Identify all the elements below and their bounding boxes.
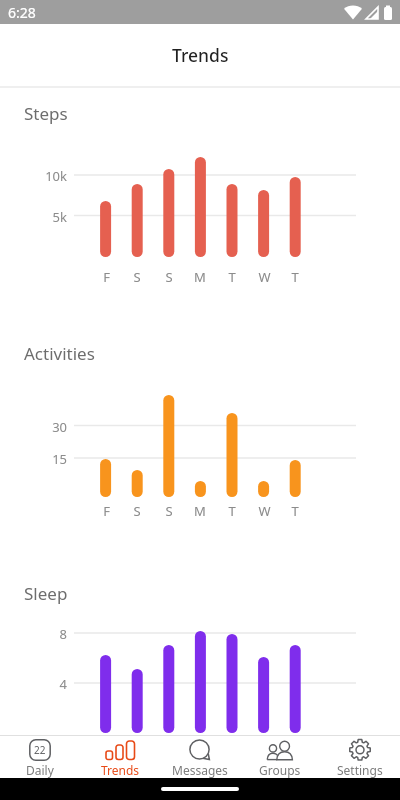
staticText: F bbox=[103, 268, 110, 284]
staticText: Sleep bbox=[24, 582, 68, 605]
staticText: 10k bbox=[45, 167, 67, 183]
staticText: M bbox=[194, 502, 206, 518]
staticText: T bbox=[228, 268, 236, 284]
staticText: 5k bbox=[52, 208, 67, 224]
staticText: 30 bbox=[52, 418, 67, 434]
staticText: 6:28 bbox=[8, 3, 36, 22]
staticText: Groups bbox=[259, 762, 301, 778]
staticText: F bbox=[103, 502, 110, 518]
staticText: W bbox=[258, 268, 271, 284]
button[interactable]: Groups bbox=[240, 736, 320, 778]
staticText: Messages bbox=[172, 762, 228, 778]
staticText: 22 bbox=[34, 743, 46, 757]
staticText: T bbox=[291, 268, 299, 284]
staticText: Settings bbox=[337, 762, 383, 778]
button[interactable]: Messages bbox=[160, 736, 240, 778]
staticText: Steps bbox=[24, 102, 68, 125]
button[interactable]: Settings bbox=[320, 736, 400, 778]
button[interactable]: Trends bbox=[80, 736, 160, 778]
staticText: Trends bbox=[172, 43, 229, 67]
staticText: W bbox=[258, 502, 271, 518]
staticText: 4 bbox=[59, 675, 67, 691]
staticText: 15 bbox=[52, 450, 67, 466]
staticText: S bbox=[133, 502, 141, 518]
staticText: S bbox=[133, 268, 141, 284]
staticText: M bbox=[194, 268, 206, 284]
staticText: T bbox=[291, 502, 299, 518]
staticText: 8 bbox=[59, 625, 67, 641]
staticText: S bbox=[165, 502, 173, 518]
staticText: S bbox=[165, 268, 173, 284]
staticText: Daily bbox=[26, 762, 54, 778]
staticText: T bbox=[228, 502, 236, 518]
staticText: Trends bbox=[101, 762, 140, 778]
staticText: Activities bbox=[24, 342, 95, 365]
button[interactable]: 22 bbox=[0, 736, 80, 778]
